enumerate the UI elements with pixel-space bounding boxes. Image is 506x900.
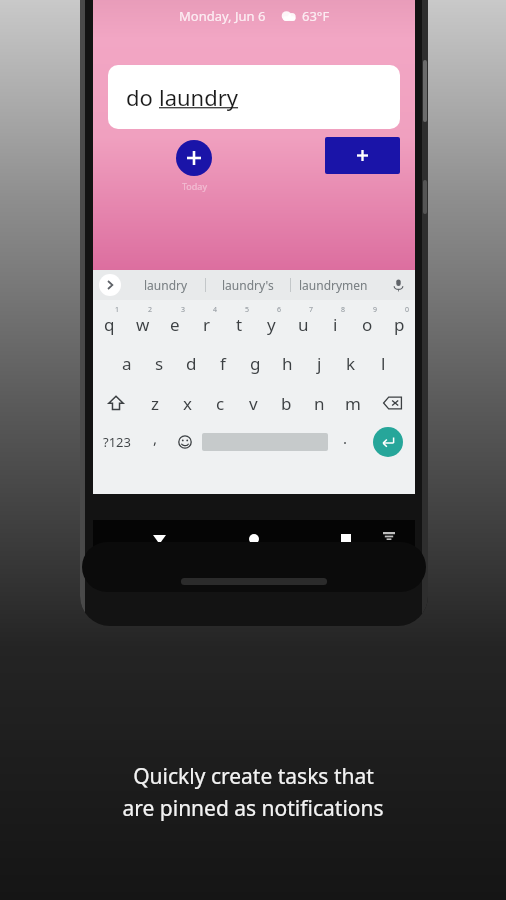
staticText: u bbox=[298, 313, 309, 336]
staticText: 9 bbox=[373, 305, 378, 315]
button[interactable]: c bbox=[204, 388, 237, 418]
staticText: o bbox=[362, 313, 373, 336]
button[interactable]: . bbox=[331, 422, 360, 462]
button[interactable]: 5 bbox=[223, 304, 255, 338]
button[interactable]: Voice input bbox=[388, 275, 408, 295]
button[interactable]: 0 bbox=[383, 304, 415, 338]
button[interactable]: d bbox=[175, 348, 207, 378]
staticText: , bbox=[153, 428, 158, 448]
button[interactable]: l bbox=[367, 348, 399, 378]
button[interactable]: j bbox=[303, 348, 335, 378]
staticText: laundry's bbox=[222, 277, 274, 293]
staticText: p bbox=[394, 313, 405, 336]
staticText: x bbox=[183, 392, 192, 415]
staticText: b bbox=[281, 392, 292, 415]
staticText: Monday, Jun 6 bbox=[179, 7, 266, 25]
staticText: Today bbox=[182, 180, 207, 192]
button[interactable]: Add bbox=[325, 137, 400, 174]
staticText: are pinned as notifications bbox=[122, 794, 384, 823]
staticText: 1 bbox=[115, 305, 120, 315]
button[interactable]: f bbox=[207, 348, 239, 378]
staticText: Quickly create tasks that bbox=[133, 762, 374, 791]
button[interactable]: s bbox=[143, 348, 175, 378]
button[interactable]: More suggestions bbox=[99, 274, 121, 296]
staticText: r bbox=[203, 313, 211, 336]
button[interactable]: Home bbox=[244, 529, 264, 549]
staticText: 6 bbox=[277, 305, 282, 315]
staticText: 0 bbox=[405, 305, 410, 315]
button[interactable]: 7 bbox=[287, 304, 319, 338]
button[interactable]: laundry's bbox=[206, 277, 290, 293]
staticText: n bbox=[314, 392, 325, 415]
button[interactable]: g bbox=[239, 348, 271, 378]
button[interactable]: , bbox=[141, 422, 170, 462]
staticText: 4 bbox=[213, 305, 218, 315]
button[interactable]: n bbox=[303, 388, 336, 418]
button[interactable]: Back bbox=[149, 529, 169, 549]
staticText: 3 bbox=[181, 305, 186, 315]
button[interactable]: Backspace bbox=[369, 388, 415, 418]
staticText: 2 bbox=[148, 305, 153, 315]
staticText: q bbox=[104, 313, 115, 336]
staticText: z bbox=[151, 392, 159, 415]
button[interactable]: 6 bbox=[255, 304, 287, 338]
button[interactable]: laundrymen bbox=[291, 277, 375, 293]
button[interactable]: h bbox=[271, 348, 303, 378]
staticText: t bbox=[236, 313, 243, 336]
staticText: a bbox=[122, 352, 132, 375]
staticText: 8 bbox=[341, 305, 346, 315]
staticText: 63°F bbox=[302, 7, 330, 25]
staticText: laundry bbox=[144, 277, 188, 293]
staticText: laundry bbox=[159, 82, 239, 112]
button[interactable]: a bbox=[110, 348, 143, 378]
staticText: laundrymen bbox=[299, 277, 368, 293]
button[interactable]: v bbox=[237, 388, 270, 418]
button[interactable]: ?123 bbox=[93, 422, 141, 462]
button[interactable]: Enter bbox=[373, 427, 403, 457]
button[interactable]: Shift bbox=[93, 388, 138, 418]
button[interactable]: 4 bbox=[191, 304, 223, 338]
button[interactable]: do bbox=[108, 65, 400, 129]
button[interactable]: Add task for today bbox=[176, 140, 212, 176]
staticText: y bbox=[267, 313, 276, 336]
staticText: v bbox=[249, 392, 258, 415]
staticText: m bbox=[345, 392, 361, 415]
staticText: . bbox=[343, 428, 348, 448]
staticText: i bbox=[333, 313, 338, 336]
button[interactable]: 3 bbox=[159, 304, 191, 338]
button[interactable]: 9 bbox=[351, 304, 383, 338]
staticText: s bbox=[155, 352, 164, 375]
staticText: g bbox=[250, 352, 261, 375]
staticText: l bbox=[381, 352, 386, 375]
staticText: d bbox=[186, 352, 197, 375]
staticText: ?123 bbox=[103, 433, 131, 451]
button[interactable]: Recent apps bbox=[336, 529, 356, 549]
staticText: 7 bbox=[309, 305, 314, 315]
button[interactable]: m bbox=[336, 388, 369, 418]
button[interactable]: 2 bbox=[126, 304, 159, 338]
button[interactable]: 8 bbox=[319, 304, 351, 338]
staticText: w bbox=[136, 313, 150, 336]
staticText: f bbox=[220, 352, 226, 375]
button[interactable]: Change keyboard bbox=[380, 530, 398, 542]
button[interactable]: z bbox=[138, 388, 171, 418]
staticText: 5 bbox=[245, 305, 250, 315]
button[interactable]: k bbox=[335, 348, 367, 378]
staticText: do bbox=[126, 82, 159, 112]
button[interactable]: 1 bbox=[93, 304, 126, 338]
button[interactable]: x bbox=[171, 388, 204, 418]
staticText: e bbox=[170, 313, 180, 336]
button[interactable]: laundry bbox=[127, 277, 205, 293]
staticText: k bbox=[346, 352, 356, 375]
staticText: c bbox=[216, 392, 225, 415]
staticText: h bbox=[282, 352, 293, 375]
button[interactable]: b bbox=[270, 388, 303, 418]
button[interactable]: Emoji bbox=[170, 422, 199, 462]
staticText: j bbox=[317, 352, 322, 375]
